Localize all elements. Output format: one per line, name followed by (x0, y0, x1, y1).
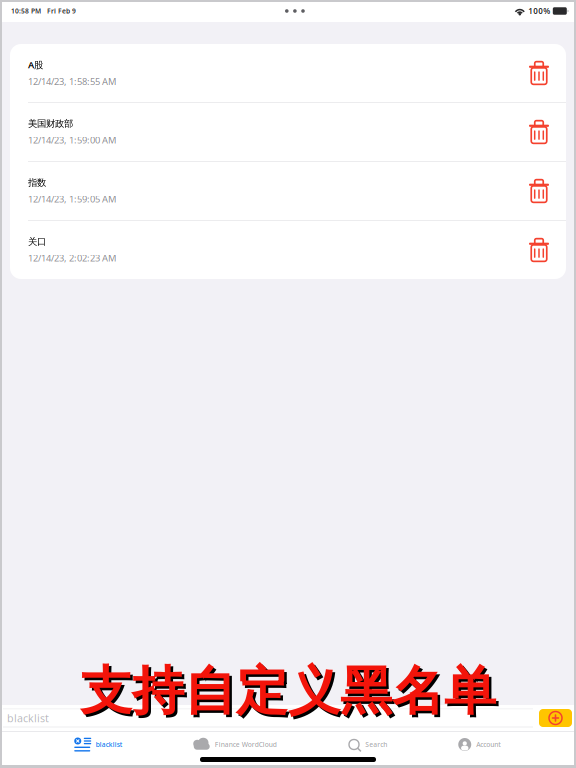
button[interactable]: Finance WordCloud (194, 729, 277, 760)
button[interactable]: Add to blacklist (539, 709, 572, 727)
staticText: Search (365, 740, 387, 749)
staticText: 100% (528, 6, 550, 16)
staticText: 10:58 PM (11, 7, 41, 15)
staticText: 支持自定义黑名单 (80, 659, 496, 723)
button[interactable]: Search (348, 729, 387, 760)
staticText: Fri Feb 9 (41, 7, 76, 15)
button[interactable]: Account (458, 729, 501, 760)
staticText: 12/14/23, 1:58:55 AM (28, 75, 116, 88)
staticText: 12/14/23, 1:59:05 AM (28, 193, 116, 205)
button[interactable]: Delete 关口 (516, 227, 562, 273)
staticText: 美国财政部 (28, 118, 73, 129)
staticText: A股 (28, 58, 43, 71)
staticText: 12/14/23, 1:59:00 AM (28, 134, 116, 146)
staticText: 12/14/23, 2:02:23 AM (28, 252, 116, 264)
staticText: 关口 (28, 236, 46, 247)
staticText: blacklist (96, 740, 123, 749)
button[interactable]: Delete 美国财政部 (516, 109, 562, 155)
staticText: 支持自定义黑名单 (82, 662, 498, 725)
button[interactable]: blacklist (75, 729, 123, 760)
button[interactable]: Delete A股 (516, 50, 562, 96)
staticText: blacklist (7, 711, 49, 725)
staticText: Account (476, 740, 501, 749)
staticText: 指数 (28, 177, 46, 188)
staticText: Finance WordCloud (215, 740, 277, 749)
button[interactable]: Delete 指数 (516, 168, 562, 214)
